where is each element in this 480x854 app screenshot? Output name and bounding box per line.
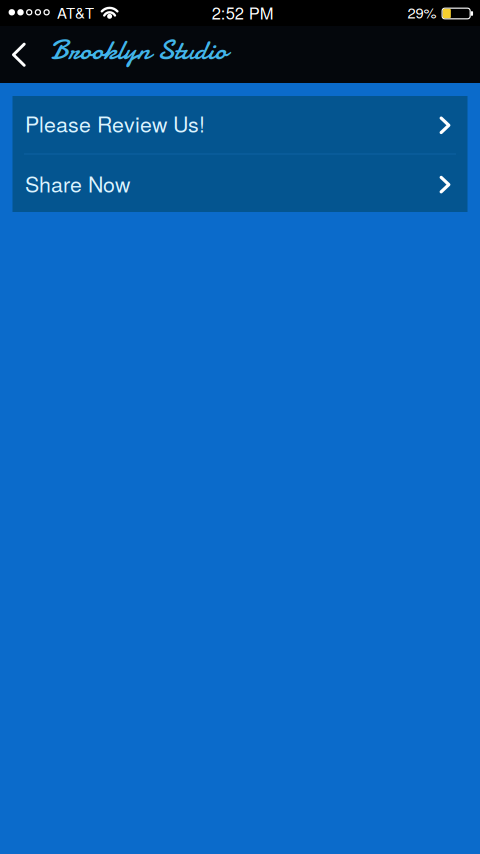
staticText: Please Review Us! (25, 108, 205, 138)
staticText: AT&T (57, 1, 94, 23)
button[interactable]: Share Now (12, 154, 467, 212)
staticText: Share Now (25, 168, 130, 198)
staticText: 29% (407, 2, 436, 23)
staticText: 2:52 PM (212, 0, 274, 24)
staticText: Brooklyn Studio (50, 30, 227, 70)
button[interactable]: Back (0, 32, 41, 76)
button[interactable]: Please Review Us! (12, 96, 467, 154)
